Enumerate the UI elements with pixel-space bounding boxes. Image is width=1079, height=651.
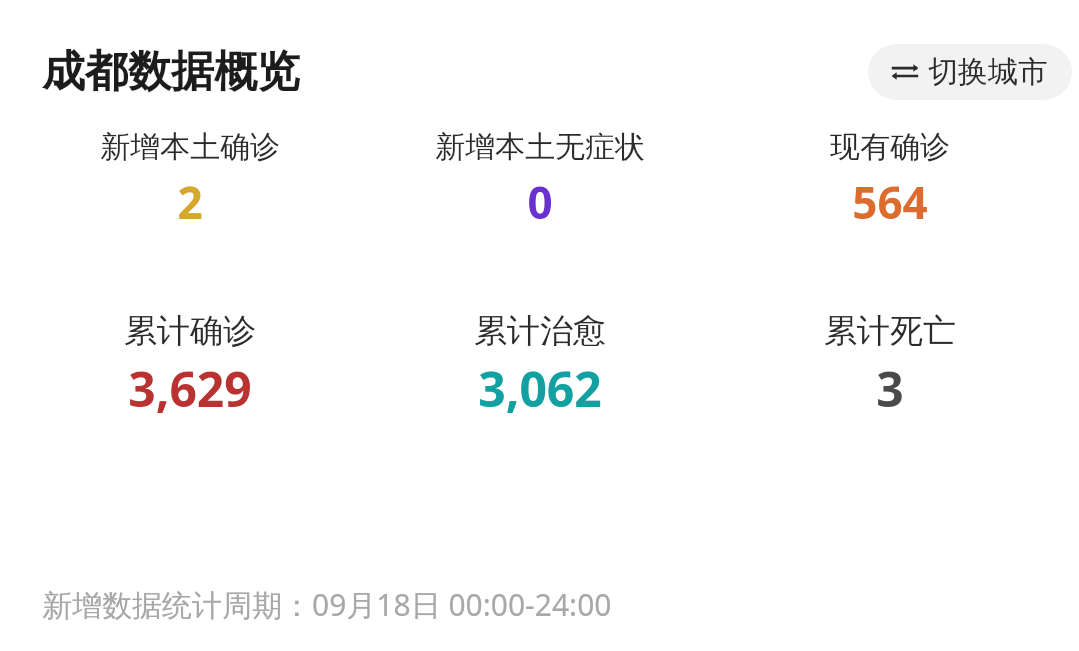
staticText: 现有确诊 (830, 128, 950, 166)
staticText: 564 (852, 172, 928, 232)
staticText: 3 (876, 356, 904, 421)
staticText: 累计确诊 (124, 310, 256, 352)
button[interactable]: 累计治愈 (365, 310, 715, 421)
staticText: 累计死亡 (824, 310, 956, 352)
staticText: 成都数据概览 (42, 45, 300, 99)
staticText: 0 (527, 172, 553, 232)
staticText: 累计治愈 (474, 310, 606, 352)
button[interactable]: 累计确诊 (14, 310, 365, 421)
staticText: 3,629 (128, 356, 252, 421)
staticText: 2 (177, 172, 203, 232)
button[interactable]: 新增本土确诊 (14, 128, 365, 232)
button[interactable]: 累计死亡 (715, 310, 1065, 421)
button[interactable]: 现有确诊 (715, 128, 1065, 232)
staticText: 切换城市 (928, 53, 1048, 91)
button[interactable]: 切换城市 (868, 44, 1072, 100)
staticText: 新增本土确诊 (100, 128, 280, 166)
staticText: 新增数据统计周期：09月18日 00:00-24:00 (42, 584, 612, 625)
staticText: 3,062 (478, 356, 602, 421)
staticText: 新增本土无症状 (435, 128, 645, 166)
button[interactable]: 新增本土无症状 (365, 128, 715, 232)
